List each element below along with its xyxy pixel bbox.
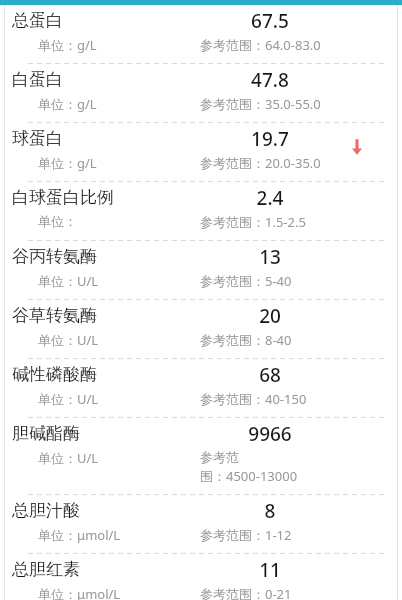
staticText: 参考范围：0-21 <box>200 585 292 600</box>
button[interactable]: 总胆汁酸 <box>0 495 402 553</box>
staticText: 参考范围：1.5-2.5 <box>200 213 306 231</box>
staticText: 9966 <box>200 421 340 447</box>
staticText: 白球蛋白比例 <box>12 187 114 208</box>
other: Below reference range <box>345 135 369 159</box>
button[interactable]: 谷丙转氨酶 <box>0 241 402 299</box>
staticText: 单位：g/L <box>38 154 97 172</box>
staticText: 8 <box>200 498 340 524</box>
staticText: 单位：U/L <box>38 272 99 290</box>
button[interactable]: 谷草转氨酶 <box>0 300 402 358</box>
staticText: 参考范 围：4500-13000 <box>200 449 298 485</box>
staticText: 单位：g/L <box>38 95 97 113</box>
button[interactable]: 总蛋白 <box>0 5 402 63</box>
staticText: 参考范围：40-150 <box>200 390 307 408</box>
staticText: 总蛋白 <box>12 10 63 31</box>
button[interactable]: 总胆红素 <box>0 554 402 600</box>
staticText: 20 <box>200 303 340 329</box>
staticText: 胆碱酯酶 <box>12 423 80 444</box>
staticText: 白蛋白 <box>12 69 63 90</box>
staticText: 19.7 <box>200 126 340 152</box>
staticText: 参考范围：35.0-55.0 <box>200 95 321 113</box>
staticText: 67.5 <box>200 8 340 34</box>
staticText: 谷草转氨酶 <box>12 305 97 326</box>
staticText: 谷丙转氨酶 <box>12 246 97 267</box>
staticText: 单位：μmol/L <box>38 585 121 600</box>
staticText: 68 <box>200 362 340 388</box>
staticText: 碱性磷酸酶 <box>12 364 97 385</box>
button[interactable]: 胆碱酯酶 <box>0 418 402 494</box>
staticText: 总胆红素 <box>12 559 80 580</box>
staticText: 总胆汁酸 <box>12 500 80 521</box>
staticText: 球蛋白 <box>12 128 63 149</box>
staticText: 参考范围：1-12 <box>200 526 292 544</box>
staticText: 2.4 <box>200 185 340 211</box>
staticText: 单位：g/L <box>38 36 97 54</box>
button[interactable]: 球蛋白 <box>0 123 402 181</box>
staticText: 参考范围：8-40 <box>200 331 292 349</box>
staticText: 单位： <box>38 213 77 229</box>
staticText: 单位：μmol/L <box>38 526 121 544</box>
staticText: 参考范围：5-40 <box>200 272 292 290</box>
staticText: 11 <box>200 557 340 583</box>
staticText: 单位：U/L <box>38 390 99 408</box>
staticText: 单位：U/L <box>38 331 99 349</box>
button[interactable]: 白球蛋白比例 <box>0 182 402 240</box>
button[interactable]: 碱性磷酸酶 <box>0 359 402 417</box>
staticText: 参考范围：64.0-83.0 <box>200 36 321 54</box>
staticText: 单位：U/L <box>38 449 99 467</box>
staticText: 13 <box>200 244 340 270</box>
staticText: 参考范围：20.0-35.0 <box>200 154 321 172</box>
button[interactable]: 白蛋白 <box>0 64 402 122</box>
staticText: 47.8 <box>200 67 340 93</box>
